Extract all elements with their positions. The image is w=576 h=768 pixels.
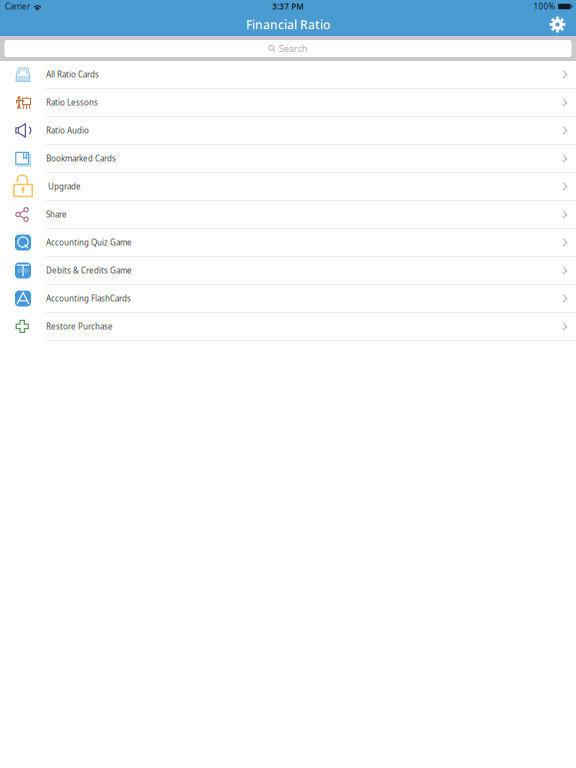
button[interactable]: Restore Purchase xyxy=(0,313,576,341)
staticText: Debits & Credits Game xyxy=(46,265,132,276)
button[interactable]: Debits & Credits Game xyxy=(0,257,576,285)
staticText: Carrier xyxy=(5,1,30,12)
staticText: Share xyxy=(46,209,67,220)
button[interactable]: Ratio Audio xyxy=(0,117,576,145)
staticText: Ratio Lessons xyxy=(46,97,98,108)
staticText: Ratio Audio xyxy=(46,125,89,136)
staticText: Accounting FlashCards xyxy=(46,293,131,304)
button[interactable]: Search xyxy=(4,40,571,57)
button[interactable]: Bookmarked Cards xyxy=(0,145,576,173)
button[interactable]: Share xyxy=(0,201,576,229)
button[interactable]: Ratio Lessons xyxy=(0,89,576,117)
button[interactable]: All Ratio Cards xyxy=(0,61,576,89)
staticText: Financial Ratio xyxy=(246,16,330,32)
staticText: Search xyxy=(279,42,308,55)
staticText: All Ratio Cards xyxy=(46,69,99,80)
staticText: Restore Purchase xyxy=(46,321,113,332)
button[interactable]: Settings xyxy=(544,13,570,36)
button[interactable]: Accounting FlashCards xyxy=(0,285,576,313)
button[interactable]: Upgrade xyxy=(0,173,576,201)
button[interactable]: Accounting Quiz Game xyxy=(0,229,576,257)
staticText: Bookmarked Cards xyxy=(46,153,116,164)
staticText: 100% xyxy=(533,1,555,12)
staticText: Accounting Quiz Game xyxy=(46,237,132,248)
staticText: Upgrade xyxy=(46,181,81,192)
staticText: 3:37 PM xyxy=(272,1,303,12)
